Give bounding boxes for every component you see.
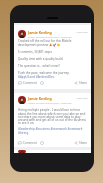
button[interactable]: Jamie Keeling — [14, 93, 91, 147]
staticText: Quality time with a quality build — [18, 57, 63, 61]
button[interactable]: Jamie Keeling — [14, 25, 91, 89]
staticText: 7 hours ago — [76, 97, 88, 100]
staticText: Hiring multiple people - I would love to… — [18, 108, 88, 125]
staticText: #AppUI and #AndroidDev — [18, 75, 55, 79]
staticText: Creator of Fluent and the Toast | Mobile… — [28, 36, 72, 39]
staticText: Creator of Fluent and the Toast | Mobile… — [28, 102, 72, 105]
staticText: 7 hours ago — [76, 31, 88, 34]
button[interactable]: Comment — [18, 140, 37, 146]
staticText: Cracked off the roll out for this Mobile… — [18, 39, 88, 47]
staticText: Jamie Keeling — [28, 30, 52, 35]
staticText: Push the pace, welcome the journey. — [18, 71, 70, 75]
staticText: 5 commits, 30,881 steps — [18, 50, 52, 54]
button[interactable]: Comment — [18, 80, 37, 86]
staticText: #leadership #business #teamwork #newwork… — [18, 127, 83, 135]
button[interactable]: React — [40, 81, 44, 85]
staticText: Comment — [23, 141, 37, 145]
staticText: Share — [79, 81, 88, 85]
staticText: Jamie Keeling — [28, 96, 52, 101]
staticText: Share — [79, 141, 88, 145]
button[interactable]: React — [40, 141, 44, 145]
staticText: The question is... what's next? — [18, 64, 60, 68]
button[interactable]: Share — [74, 140, 88, 146]
staticText: Comment — [23, 81, 37, 85]
button[interactable]: Share — [74, 80, 88, 86]
